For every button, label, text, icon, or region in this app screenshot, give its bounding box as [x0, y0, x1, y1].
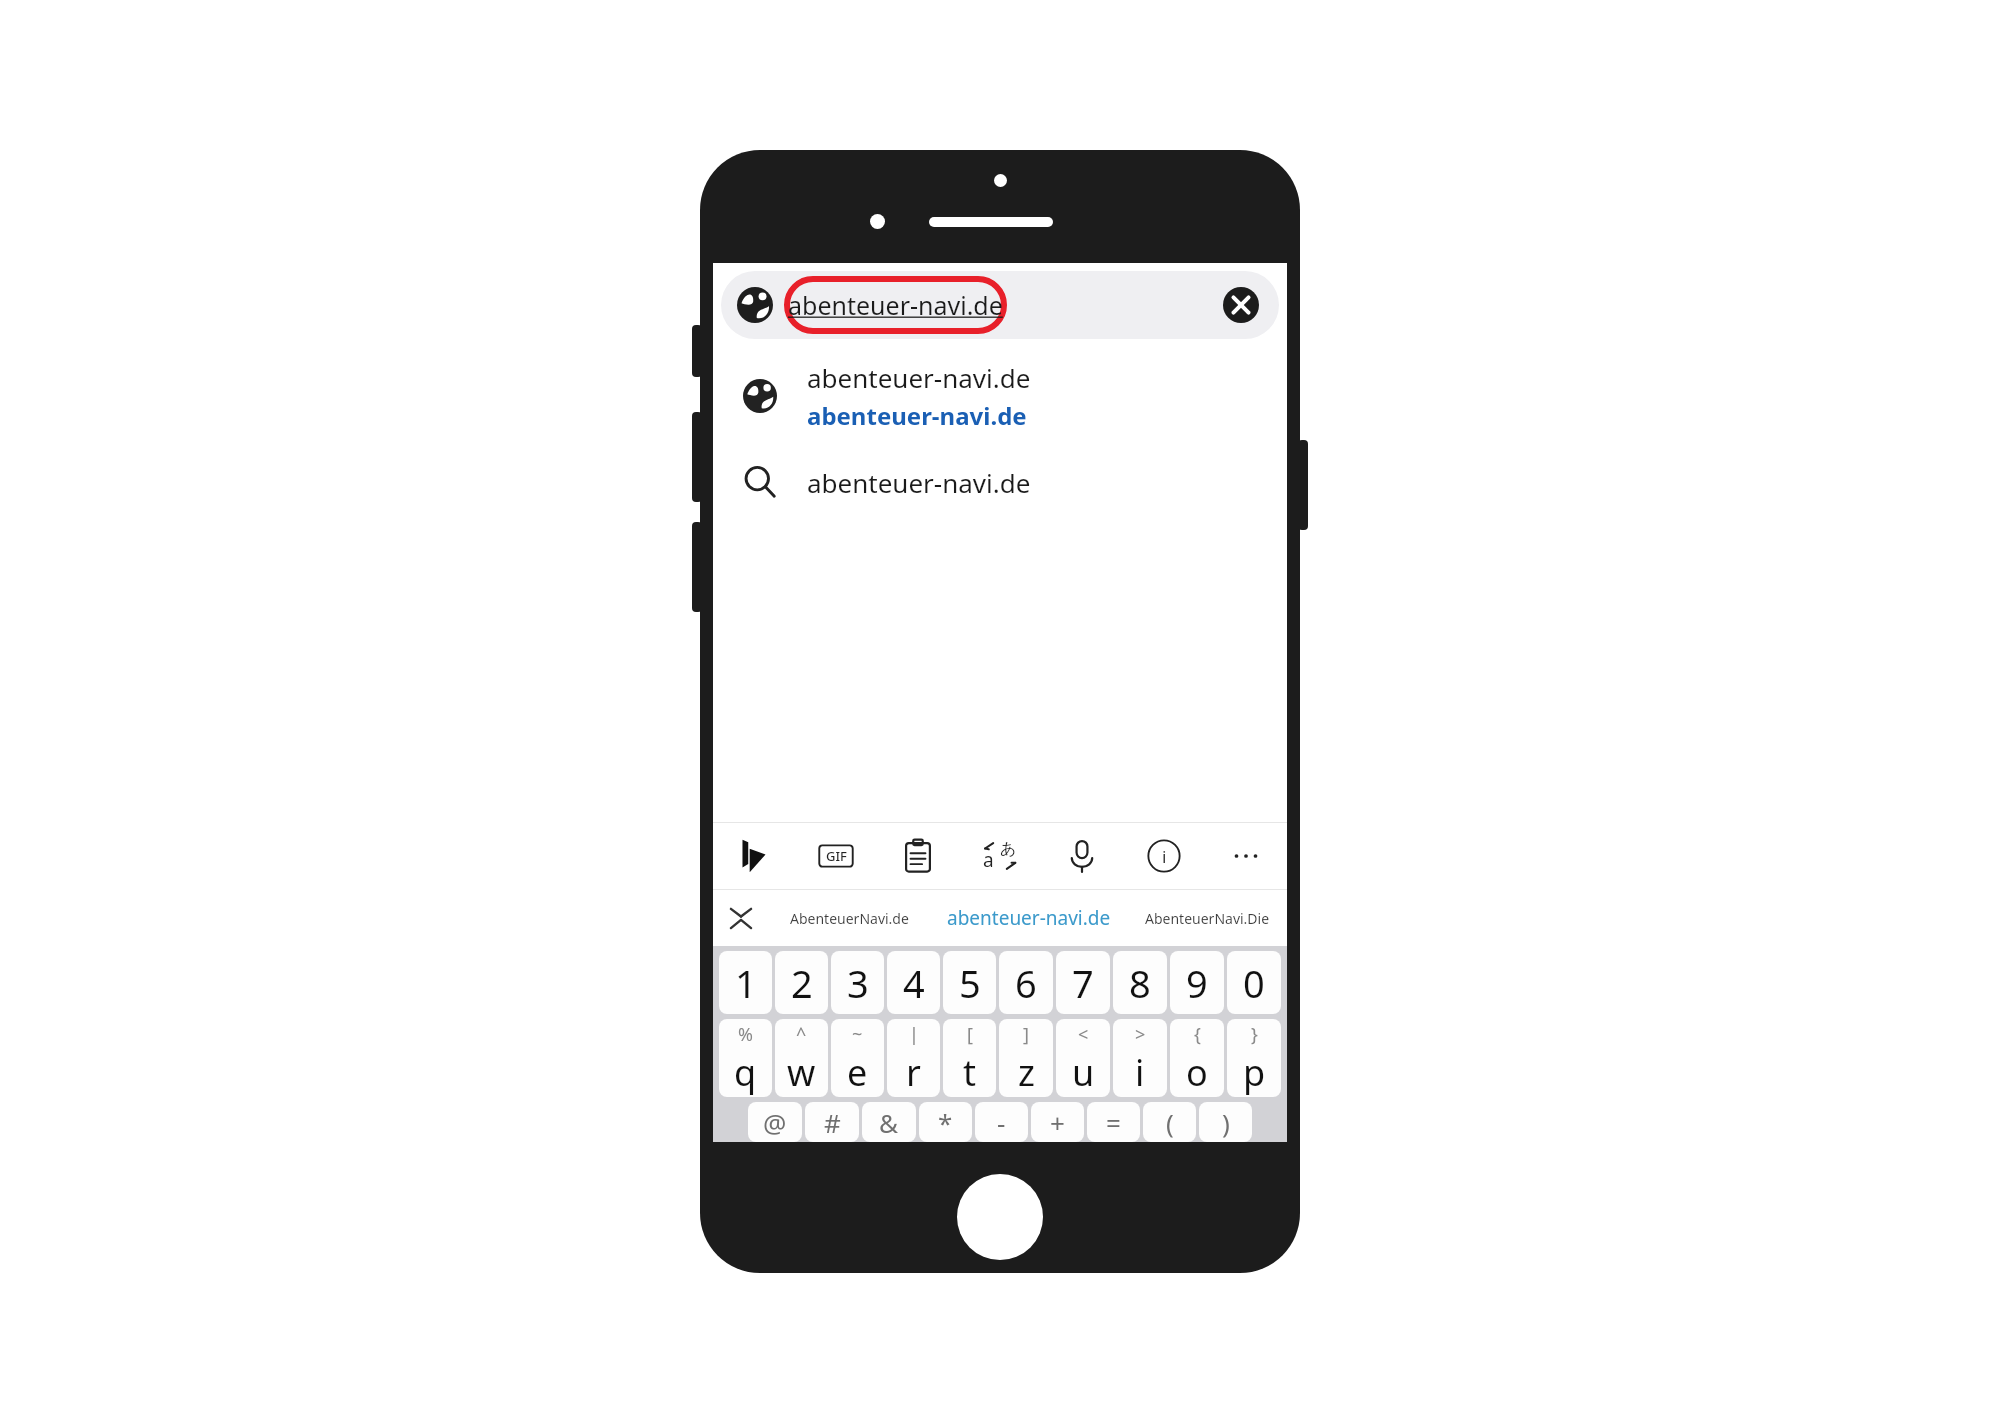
button[interactable]: 8 [1113, 951, 1167, 1014]
staticText: abenteuer-navi.de [807, 399, 1027, 432]
staticText: 3 [847, 957, 869, 1009]
staticText: ^ [796, 1022, 807, 1047]
staticText: 0 [1243, 957, 1265, 1009]
staticText: 6 [1015, 957, 1037, 1009]
button[interactable]: 6 [999, 951, 1053, 1014]
button[interactable]: 1 [719, 951, 772, 1014]
staticText: 5 [959, 957, 981, 1009]
button[interactable]: AbenteuerNavi.de [769, 890, 929, 946]
button[interactable]: % [719, 1019, 772, 1097]
button[interactable]: * [919, 1102, 972, 1142]
staticText: @ [763, 1105, 787, 1140]
staticText: ( [1166, 1105, 1174, 1140]
staticText: p [1243, 1048, 1266, 1097]
staticText: % [738, 1022, 753, 1047]
staticText: AbenteuerNavi.Die [1145, 909, 1270, 928]
button[interactable]: 7 [1056, 951, 1110, 1014]
staticText: i [1162, 845, 1167, 868]
staticText: GIF [826, 847, 847, 865]
staticText: AbenteuerNavi.de [790, 909, 909, 928]
button[interactable]: Clear [1223, 287, 1259, 323]
button[interactable]: 0 [1227, 951, 1281, 1014]
staticText: 2 [791, 957, 813, 1009]
button[interactable]: 2 [775, 951, 828, 1014]
staticText: t [963, 1048, 976, 1097]
button[interactable]: { [1170, 1019, 1224, 1097]
button[interactable]: 5 [943, 951, 996, 1014]
staticText: = [1106, 1105, 1121, 1140]
staticText: & [879, 1105, 899, 1140]
staticText: 4 [903, 957, 925, 1009]
staticText: # [824, 1105, 841, 1140]
button[interactable]: 9 [1170, 951, 1224, 1014]
button[interactable]: 4 [887, 951, 940, 1014]
button[interactable]: - [975, 1102, 1028, 1142]
staticText: - [997, 1105, 1006, 1140]
staticText: a [983, 847, 994, 873]
staticText: < [1078, 1022, 1089, 1047]
staticText: * [938, 1105, 953, 1140]
button[interactable]: More [1205, 823, 1287, 889]
staticText: 1 [735, 957, 757, 1009]
button[interactable]: } [1227, 1019, 1281, 1097]
button[interactable]: ( [1143, 1102, 1196, 1142]
button[interactable]: ] [999, 1019, 1053, 1097]
staticText: abenteuer-navi.de [947, 905, 1111, 931]
staticText: 7 [1072, 957, 1094, 1009]
button[interactable]: ) [1199, 1102, 1252, 1142]
staticText: i [1135, 1048, 1145, 1097]
staticText: { [1194, 1022, 1201, 1047]
staticText: o [1186, 1048, 1208, 1097]
button[interactable]: ~ [831, 1019, 884, 1097]
staticText: u [1072, 1048, 1095, 1097]
button[interactable]: abenteuer-navi.de [713, 451, 1287, 513]
button[interactable]: Info [1123, 823, 1205, 889]
staticText: | [909, 1022, 919, 1047]
staticText: > [1135, 1022, 1146, 1047]
staticText: ~ [852, 1022, 863, 1047]
staticText: e [847, 1048, 868, 1097]
button[interactable]: Bing [713, 823, 795, 889]
button[interactable]: 3 [831, 951, 884, 1014]
staticText: 8 [1129, 957, 1151, 1009]
button[interactable]: Translate [959, 823, 1041, 889]
staticText: [ [967, 1022, 973, 1047]
button[interactable]: & [862, 1102, 916, 1142]
staticText: r [906, 1048, 921, 1097]
button[interactable]: Voice [1041, 823, 1123, 889]
button[interactable]: + [1031, 1102, 1084, 1142]
staticText: ) [1222, 1105, 1230, 1140]
button[interactable]: = [1087, 1102, 1140, 1142]
button[interactable]: abenteuer-navi.de [929, 890, 1128, 946]
button[interactable]: Expand [713, 890, 769, 946]
button[interactable]: @ [748, 1102, 802, 1142]
staticText: z [1018, 1048, 1035, 1097]
staticText: } [1251, 1022, 1258, 1047]
staticText: abenteuer-navi.de [788, 288, 1003, 322]
button[interactable]: abenteuer-navi.de [713, 353, 1287, 439]
button[interactable]: | [887, 1019, 940, 1097]
button[interactable]: GIF [795, 823, 877, 889]
staticText: w [787, 1048, 816, 1097]
staticText: 9 [1186, 957, 1208, 1009]
button[interactable]: > [1113, 1019, 1167, 1097]
button[interactable]: AbenteuerNavi.Die [1128, 890, 1287, 946]
button[interactable]: [ [943, 1019, 996, 1097]
staticText: abenteuer-navi.de [807, 360, 1031, 395]
staticText: + [1050, 1105, 1065, 1140]
staticText: abenteuer-navi.de [807, 465, 1031, 500]
button[interactable]: ^ [775, 1019, 828, 1097]
button[interactable]: # [805, 1102, 859, 1142]
staticText: q [734, 1048, 757, 1097]
button[interactable]: < [1056, 1019, 1110, 1097]
staticText: ] [1023, 1022, 1029, 1047]
button[interactable]: abenteuer-navi.de [721, 271, 1279, 339]
button[interactable]: Home [957, 1174, 1043, 1260]
staticText: あ [1000, 839, 1017, 859]
button[interactable]: Clipboard [877, 823, 959, 889]
